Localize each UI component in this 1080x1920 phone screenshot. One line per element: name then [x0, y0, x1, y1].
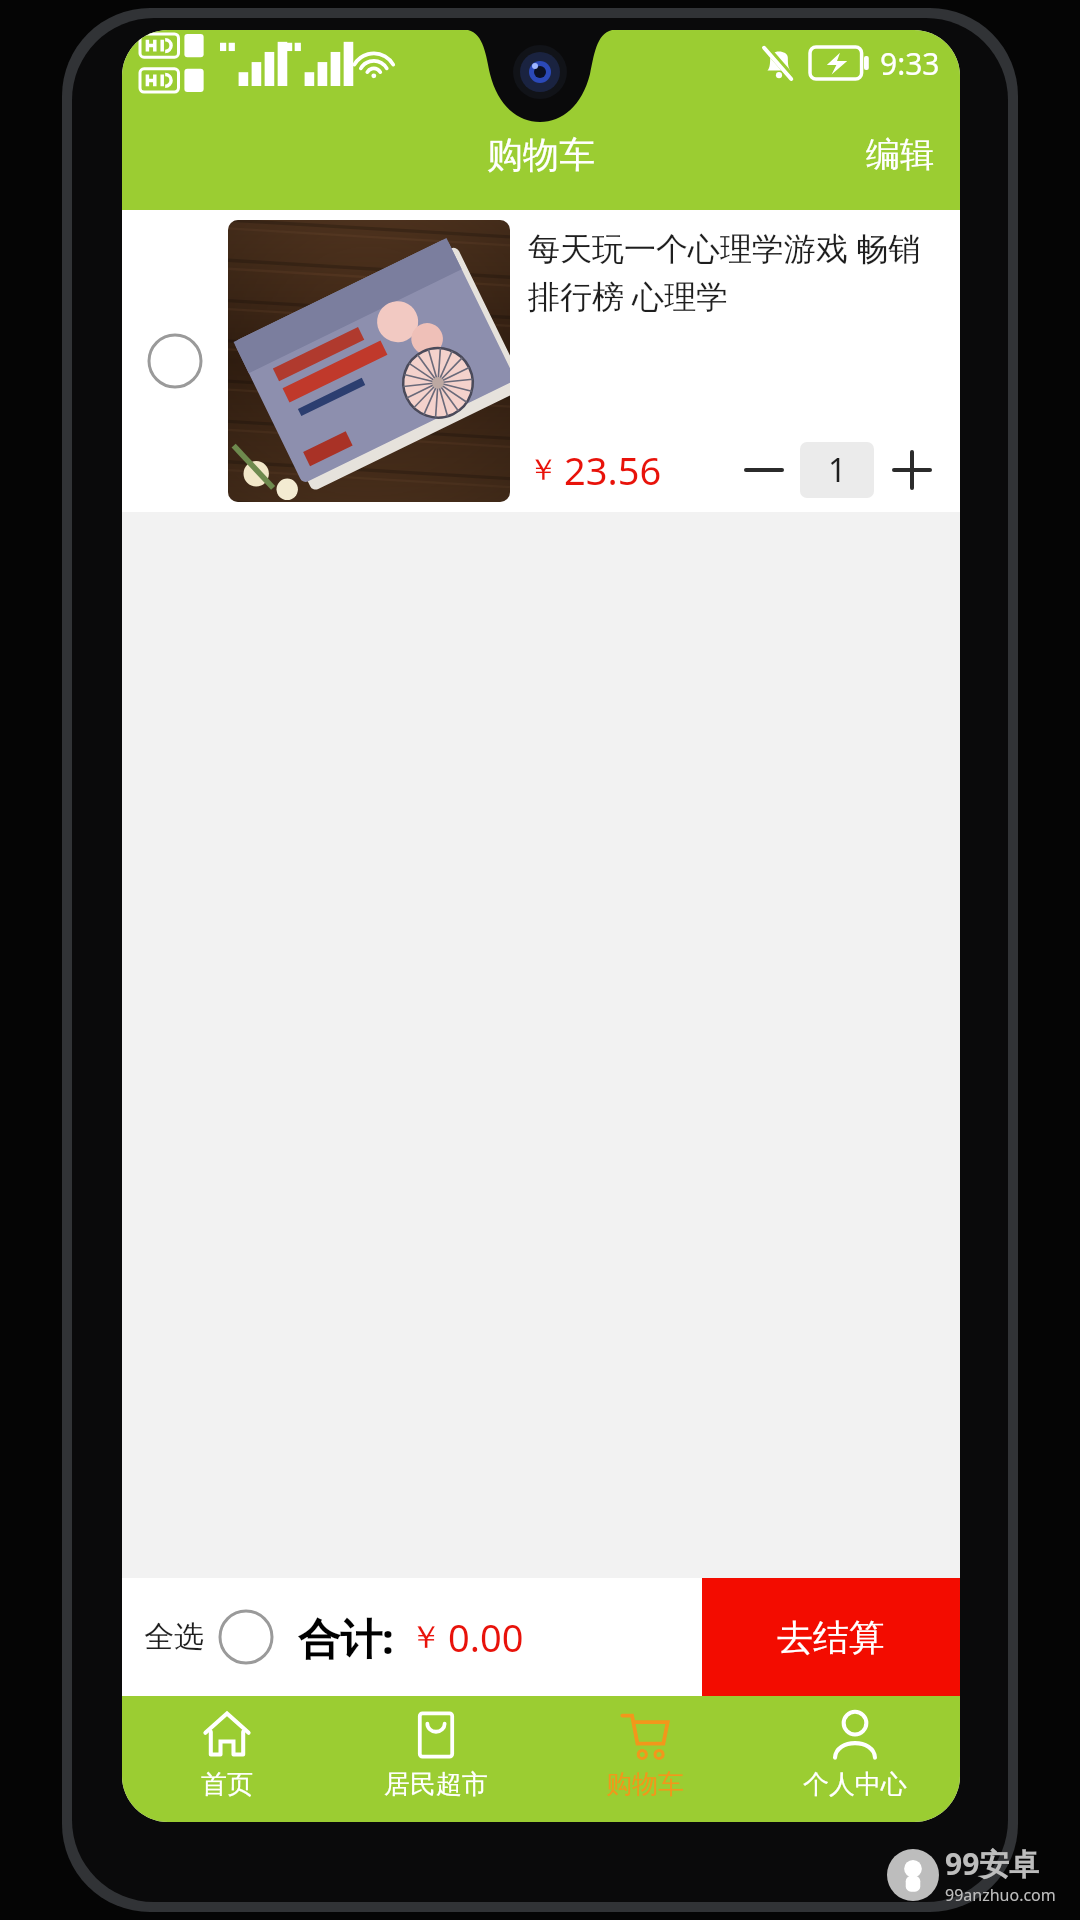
button[interactable]: 选择商品: [122, 210, 960, 512]
staticText: ￥: [410, 1617, 442, 1657]
staticText: 购物车: [606, 1768, 684, 1801]
staticText: 1: [828, 448, 847, 492]
staticText: 每天玩一个心理学游戏 畅销排行榜 心理学: [528, 226, 940, 318]
button[interactable]: 居民超市: [331, 1696, 540, 1822]
staticText: 23.56: [564, 444, 662, 496]
staticText: 合计:: [298, 1609, 394, 1666]
button[interactable]: 1: [800, 442, 874, 498]
staticText: 全选: [144, 1618, 204, 1656]
staticText: 个人中心: [803, 1768, 907, 1801]
button[interactable]: 增加: [884, 442, 940, 498]
staticText: 去结算: [777, 1615, 885, 1660]
staticText: 99anzhuo.com: [945, 1884, 1056, 1906]
button[interactable]: 去结算: [702, 1578, 960, 1696]
button[interactable]: 选择商品: [122, 210, 228, 512]
staticText: 99安卓: [945, 1843, 1040, 1884]
button[interactable]: 全选: [138, 1597, 280, 1677]
staticText: 编辑: [866, 133, 934, 176]
staticText: 0.00: [448, 1611, 524, 1663]
staticText: 居民超市: [384, 1768, 488, 1801]
button[interactable]: 购物车: [540, 1696, 750, 1822]
button[interactable]: 减少: [736, 450, 792, 490]
staticText: 9:33: [880, 43, 940, 84]
button[interactable]: 个人中心: [750, 1696, 960, 1822]
staticText: ￥: [528, 451, 558, 489]
staticText: 购物车: [487, 132, 595, 177]
button[interactable]: 编辑: [840, 113, 960, 196]
button[interactable]: 首页: [122, 1696, 331, 1822]
staticText: 首页: [201, 1768, 253, 1801]
